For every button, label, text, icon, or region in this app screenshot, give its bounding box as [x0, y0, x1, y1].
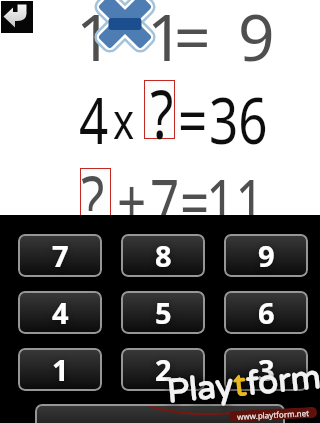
- staticText: ?: [150, 66, 174, 159]
- button[interactable]: 1: [18, 348, 102, 391]
- button[interactable]: [35, 404, 285, 423]
- button[interactable]: [1, 1, 33, 33]
- staticText: 36: [209, 76, 268, 163]
- staticText: 2: [155, 350, 172, 389]
- staticText: +: [117, 157, 147, 244]
- staticText: www.playtform.net: [237, 407, 309, 422]
- staticText: 11: [206, 158, 265, 245]
- button[interactable]: 6: [224, 291, 308, 334]
- staticText: 3: [258, 350, 275, 389]
- staticText: 1: [52, 350, 69, 389]
- staticText: x: [113, 86, 135, 154]
- staticText: 4: [79, 76, 109, 163]
- staticText: 9: [258, 236, 275, 275]
- button[interactable]: 8: [121, 234, 205, 277]
- staticText: 9: [238, 0, 275, 80]
- staticText: 6: [258, 293, 275, 332]
- button[interactable]: 9: [224, 234, 308, 277]
- staticText: ?: [81, 152, 105, 245]
- button[interactable]: 7: [18, 234, 102, 277]
- button[interactable]: 2: [121, 348, 205, 391]
- button[interactable]: 4: [18, 291, 102, 334]
- staticText: 7: [52, 236, 69, 275]
- staticText: Playtform: [165, 358, 320, 412]
- staticText: 1: [147, 0, 184, 80]
- staticText: =: [178, 76, 208, 163]
- staticText: =: [180, 158, 210, 245]
- staticText: =: [174, 0, 211, 80]
- staticText: 5: [155, 293, 172, 332]
- button[interactable]: 5: [121, 291, 205, 334]
- staticText: 8: [155, 236, 172, 275]
- button[interactable]: 3: [224, 348, 308, 391]
- staticText: 4: [52, 293, 69, 332]
- staticText: 7: [150, 158, 180, 245]
- staticText: 1: [76, 0, 113, 80]
